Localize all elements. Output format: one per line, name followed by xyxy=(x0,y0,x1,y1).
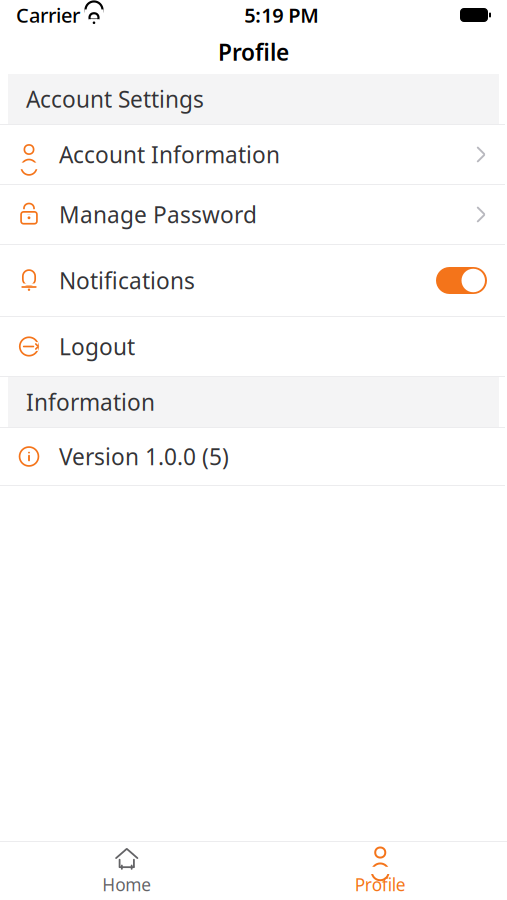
staticText: Account Settings xyxy=(26,84,204,114)
staticText: 5:19 PM xyxy=(244,2,319,28)
button[interactable]: Notifications on xyxy=(436,265,487,296)
button[interactable]: Manage Password xyxy=(0,185,507,244)
button[interactable]: Logout xyxy=(0,317,507,376)
staticText: Manage Password xyxy=(59,199,257,229)
button[interactable]: Profile xyxy=(253,842,507,900)
button[interactable]: Notifications xyxy=(0,245,507,316)
staticText: Logout xyxy=(59,331,135,361)
button[interactable]: Home xyxy=(0,842,253,900)
staticText: Profile xyxy=(218,37,289,67)
staticText: Account Information xyxy=(59,139,280,169)
staticText: Information xyxy=(26,387,155,417)
staticText: Carrier xyxy=(16,2,80,28)
staticText: Version 1.0.0 (5) xyxy=(59,441,229,471)
staticText: Notifications xyxy=(59,265,195,295)
staticText: Profile xyxy=(355,873,406,896)
button[interactable]: Account Information xyxy=(0,125,507,184)
staticText: Home xyxy=(102,873,151,896)
button[interactable]: Version 1.0.0 (5) xyxy=(0,428,507,485)
